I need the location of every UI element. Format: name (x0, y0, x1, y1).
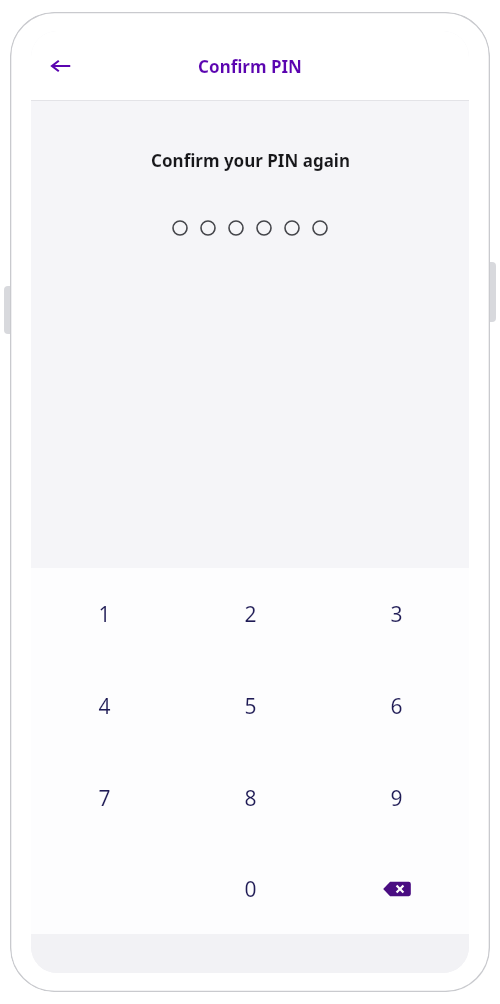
button[interactable]: 6 (323, 660, 469, 752)
button[interactable]: 2 (177, 568, 323, 660)
button[interactable]: 1 (31, 568, 177, 660)
staticText: 7 (98, 784, 111, 813)
button[interactable]: 5 (177, 660, 323, 752)
staticText: 0 (244, 875, 257, 904)
staticText: 5 (244, 692, 257, 721)
staticText: 9 (390, 784, 403, 813)
staticText: 6 (390, 692, 403, 721)
button[interactable]: 0 (177, 844, 323, 934)
button[interactable]: 3 (323, 568, 469, 660)
staticText: 8 (244, 784, 257, 813)
button[interactable]: 8 (177, 752, 323, 844)
staticText: 4 (98, 692, 111, 721)
button[interactable]: 9 (323, 752, 469, 844)
staticText: 1 (98, 600, 111, 629)
button[interactable]: 4 (31, 660, 177, 752)
staticText: Confirm your PIN again (151, 149, 350, 172)
staticText: Confirm PIN (198, 55, 302, 78)
button[interactable]: Back (37, 42, 85, 90)
staticText: 2 (244, 600, 257, 629)
button[interactable]: 7 (31, 752, 177, 844)
staticText: 3 (390, 600, 403, 629)
button[interactable]: Delete (323, 844, 469, 934)
